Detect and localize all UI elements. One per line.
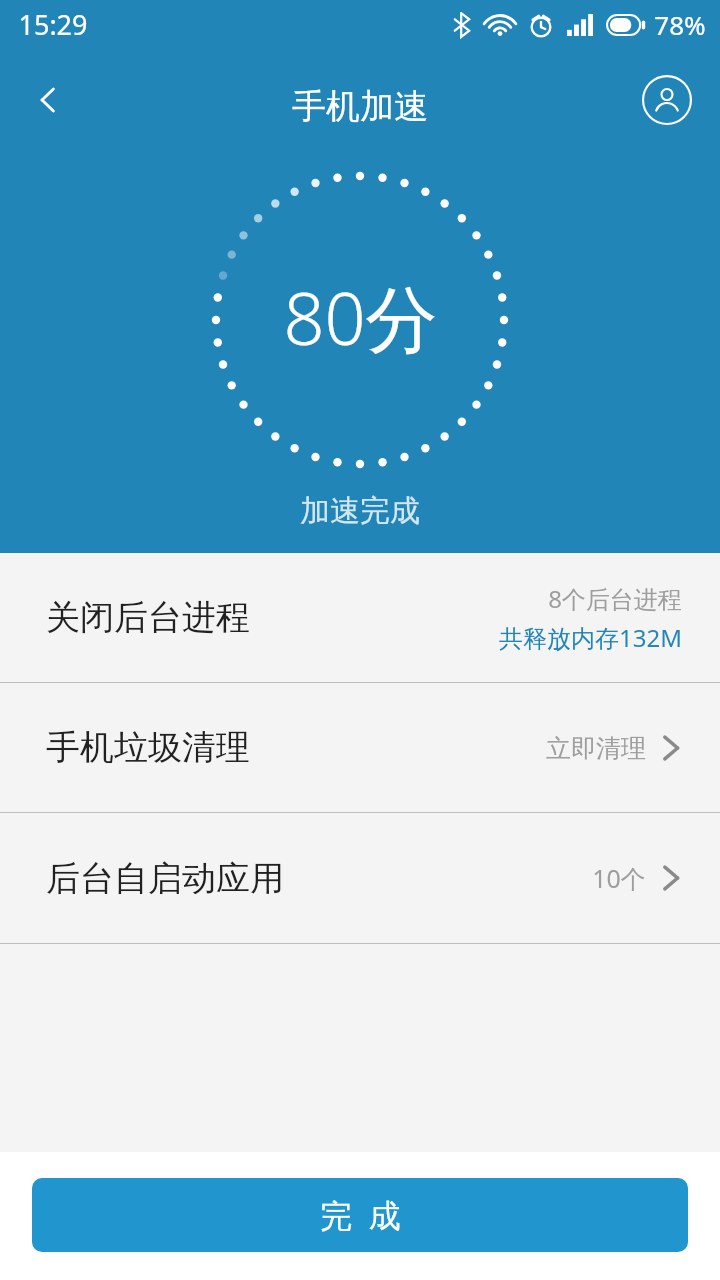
staticText: 共释放内存132M (499, 621, 682, 654)
staticText: 78% (654, 7, 706, 42)
button[interactable]: Profile (627, 60, 707, 140)
staticText: 15:29 (18, 6, 88, 43)
staticText: 关闭后台进程 (46, 596, 250, 639)
button[interactable]: 后台自启动应用 (0, 813, 720, 943)
button[interactable]: 手机垃圾清理 (0, 683, 720, 812)
button[interactable]: 完 成 (32, 1178, 688, 1252)
staticText: 手机加速 (292, 85, 428, 128)
staticText: 后台自启动应用 (46, 857, 284, 900)
button[interactable]: 关闭后台进程 (0, 553, 720, 682)
staticText: 手机垃圾清理 (46, 726, 250, 769)
staticText: 80分 (283, 268, 438, 366)
staticText: 10个 (592, 861, 646, 895)
button[interactable]: Back (8, 60, 88, 140)
staticText: 完 成 (320, 1193, 401, 1237)
staticText: 加速完成 (300, 492, 420, 530)
staticText: 立即清理 (546, 733, 646, 764)
staticText: 8个后台进程 (548, 582, 682, 615)
